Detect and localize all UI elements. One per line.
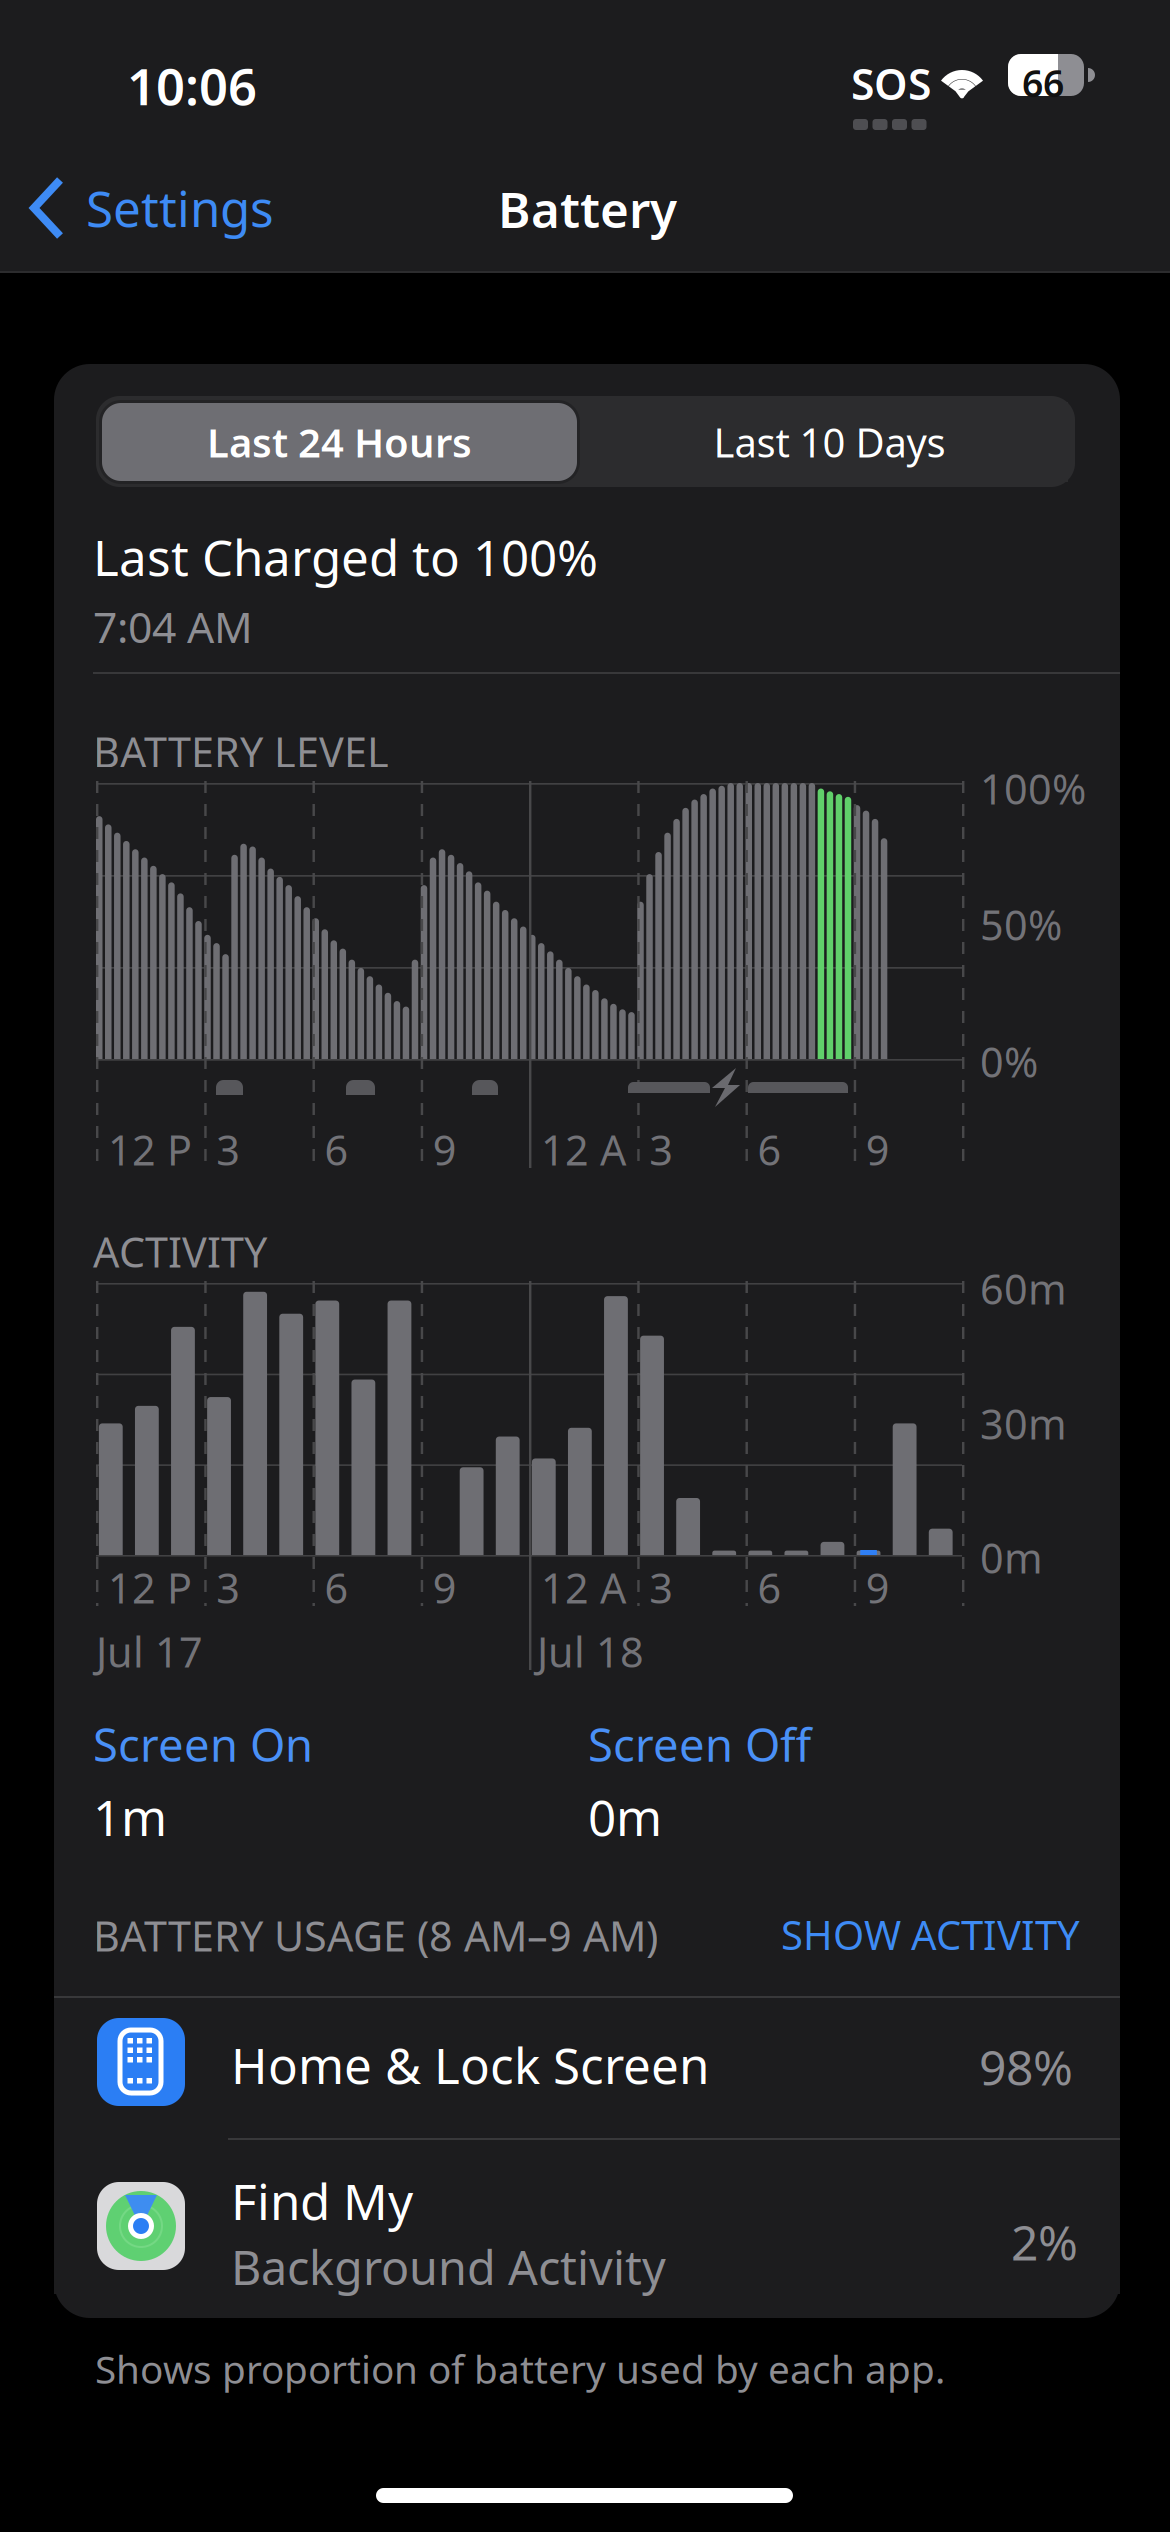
staticText: BATTERY USAGE (8 AM–9 AM) <box>93 1908 658 1963</box>
staticText: 60m <box>980 1261 1067 1316</box>
staticText: Jul 18 <box>537 1624 644 1679</box>
staticText: Last Charged to 100% <box>93 524 598 589</box>
staticText: 0m <box>980 1530 1043 1585</box>
staticText: 3 <box>649 1560 673 1615</box>
staticText: Last 10 Days <box>713 415 945 468</box>
staticText: 6 <box>324 1560 348 1615</box>
staticText: Jul 17 <box>96 1624 203 1679</box>
staticText: 50% <box>980 897 1062 952</box>
staticText: SOS <box>851 55 931 112</box>
staticText: 6 <box>757 1122 781 1177</box>
staticText: 6 <box>324 1122 348 1177</box>
button[interactable]: Last 24 Hours <box>99 400 580 484</box>
staticText: Home & Lock Screen <box>231 2032 709 2097</box>
staticText: 10:06 <box>127 52 257 119</box>
staticText: 12 P <box>108 1560 192 1615</box>
button[interactable]: Last 10 Days <box>591 402 1068 482</box>
staticText: Shows proportion of battery used by each… <box>95 2343 945 2394</box>
staticText: 2% <box>1011 2210 1078 2274</box>
button[interactable]: Find My <box>54 2140 1120 2294</box>
staticText: BATTERY LEVEL <box>93 724 389 779</box>
staticText: 1m <box>93 1784 167 1849</box>
staticText: 3 <box>216 1560 240 1615</box>
staticText: 100% <box>980 761 1086 816</box>
staticText: 9 <box>433 1560 457 1615</box>
staticText: ACTIVITY <box>93 1224 267 1279</box>
button[interactable]: Settings <box>0 0 280 100</box>
staticText: 3 <box>216 1122 240 1177</box>
staticText: Settings <box>86 175 274 240</box>
staticText: 9 <box>866 1122 890 1177</box>
staticText: 9 <box>866 1560 890 1615</box>
staticText: 12 A <box>541 1122 626 1177</box>
staticText: 7:04 AM <box>93 598 253 655</box>
staticText: 66 <box>1022 58 1064 108</box>
staticText: 30m <box>980 1396 1067 1451</box>
button[interactable]: Home & Lock Screen <box>54 1998 1120 2160</box>
staticText: 0m <box>588 1784 662 1849</box>
staticText: Screen On <box>93 1714 313 1774</box>
staticText: Screen Off <box>588 1714 811 1774</box>
staticText: Background Activity <box>231 2236 666 2298</box>
staticText: SHOW ACTIVITY <box>781 1908 1080 1961</box>
button[interactable]: SHOW ACTIVITY <box>771 1898 1090 1971</box>
staticText: 9 <box>433 1122 457 1177</box>
staticText: 98% <box>979 2035 1073 2099</box>
staticText: 6 <box>757 1560 781 1615</box>
staticText: 12 P <box>108 1122 192 1177</box>
staticText: Last 24 Hours <box>207 415 472 468</box>
staticText: 12 A <box>541 1560 626 1615</box>
staticText: Battery <box>498 176 677 241</box>
staticText: 3 <box>649 1122 673 1177</box>
staticText: 0% <box>980 1034 1038 1089</box>
staticText: Find My <box>231 2168 413 2233</box>
